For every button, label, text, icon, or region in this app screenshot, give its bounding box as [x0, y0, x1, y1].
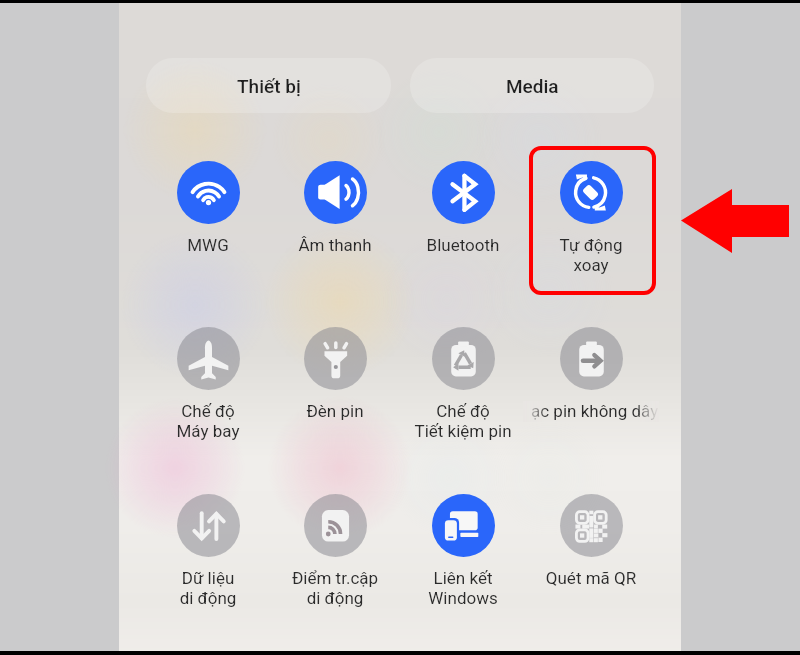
staticText: Dữ liệu	[140, 568, 276, 588]
staticText: Đèn pin	[267, 401, 403, 421]
button[interactable]: ạc pin không dây	[523, 327, 659, 422]
button[interactable]: Chế độ	[140, 327, 276, 441]
staticText: Máy bay	[140, 421, 276, 441]
button[interactable]: MWG	[140, 161, 276, 255]
staticText: Tiết kiệm pin	[395, 421, 531, 441]
staticText: Windows	[395, 588, 531, 608]
button[interactable]: Đèn pin	[267, 327, 403, 421]
button[interactable]: Thiết bị	[146, 58, 391, 113]
button[interactable]: Bluetooth	[395, 161, 531, 255]
staticText: Quét mã QR	[523, 568, 659, 588]
button[interactable]: Điểm tr.cập	[267, 494, 403, 608]
button[interactable]: Dữ liệu	[140, 494, 276, 608]
staticText: Liên kết	[395, 568, 531, 588]
staticText: ạc pin không dây	[531, 401, 667, 421]
staticText: Chế độ	[140, 401, 276, 421]
staticText: Bluetooth	[395, 235, 531, 255]
button[interactable]: Chế độ	[395, 327, 531, 441]
button[interactable]: Quét mã QR	[523, 494, 659, 588]
staticText: Âm thanh	[267, 235, 403, 255]
button[interactable]: Tự động	[523, 161, 659, 275]
button[interactable]: Liên kết	[395, 494, 531, 608]
staticText: Điểm tr.cập	[267, 568, 403, 588]
button[interactable]: Âm thanh	[267, 161, 403, 255]
staticText: Thiết bị	[237, 75, 301, 97]
staticText: MWG	[140, 235, 276, 255]
button[interactable]: Media	[410, 58, 654, 113]
staticText: xoay	[523, 255, 659, 275]
staticText: Tự động	[523, 235, 659, 255]
staticText: di động	[140, 588, 276, 608]
staticText: di động	[267, 588, 403, 608]
staticText: Media	[506, 75, 559, 97]
staticText: Chế độ	[395, 401, 531, 421]
